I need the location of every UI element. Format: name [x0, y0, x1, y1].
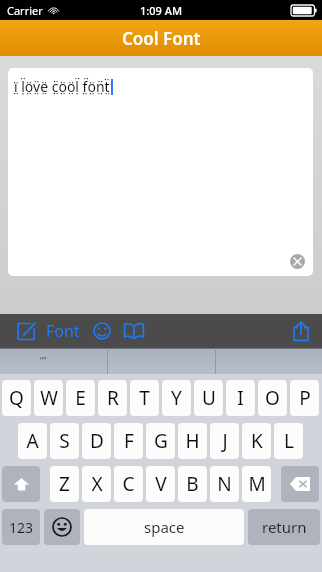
staticText: M — [248, 471, 266, 497]
staticText: Carrier — [7, 3, 43, 18]
button[interactable]: Emoji keyboard — [44, 509, 80, 545]
staticText: 123 — [9, 518, 34, 537]
staticText: B — [186, 471, 199, 497]
button[interactable]: S — [50, 423, 79, 459]
button[interactable]: 123 — [2, 509, 40, 545]
button[interactable]: B — [178, 466, 207, 502]
button[interactable]: D — [82, 423, 111, 459]
button[interactable]: R — [98, 380, 127, 416]
button[interactable]: return — [248, 509, 320, 545]
button[interactable]: Q — [2, 380, 31, 416]
button[interactable]: A — [18, 423, 47, 459]
button[interactable]: N — [210, 466, 239, 502]
staticText: U — [202, 385, 216, 411]
staticText: Cool Font — [122, 27, 201, 50]
button[interactable]: Y — [162, 380, 191, 416]
staticText: S — [59, 428, 70, 454]
staticText: N — [217, 471, 232, 497]
button[interactable]: G — [146, 423, 175, 459]
button[interactable]: Z — [50, 466, 79, 502]
staticText: C — [122, 471, 135, 497]
staticText: P — [299, 385, 311, 411]
button[interactable]: ï̤ ḷ̈ö̤v̤̈ë̤ c̤̈ö̤ö̤ḷ̈ f̤̈ö̤n̤̈ẗ̤ — [8, 68, 313, 276]
staticText: A — [26, 428, 39, 454]
staticText: Font — [46, 320, 80, 342]
button[interactable]: Cool Font — [0, 20, 322, 56]
staticText: return — [262, 517, 307, 537]
button[interactable]: Dictionary — [121, 318, 147, 344]
button[interactable]: Shift — [2, 466, 40, 502]
staticText: V — [155, 471, 167, 497]
staticText: H — [185, 428, 200, 454]
staticText: F — [124, 428, 134, 454]
button[interactable]: Clear text — [290, 254, 305, 269]
button[interactable]: P — [290, 380, 319, 416]
button[interactable]: Font — [46, 320, 80, 342]
button[interactable]: Delete — [281, 466, 319, 502]
staticText: L — [284, 428, 294, 454]
button[interactable]: T — [130, 380, 159, 416]
staticText: “” — [40, 354, 47, 366]
button[interactable]: Emoji — [89, 318, 115, 344]
staticText: I — [237, 385, 244, 411]
staticText: K — [251, 428, 263, 454]
staticText: R — [107, 385, 119, 411]
button[interactable]: Compose — [13, 318, 39, 344]
button[interactable]: C — [114, 466, 143, 502]
button[interactable]: U — [194, 380, 223, 416]
button[interactable]: K — [242, 423, 271, 459]
staticText: T — [139, 385, 150, 411]
button[interactable]: X — [82, 466, 111, 502]
staticText: X — [91, 471, 103, 497]
staticText: E — [75, 385, 86, 411]
staticText: Q — [9, 385, 24, 411]
staticText: W — [40, 385, 58, 411]
button[interactable]: L — [274, 423, 303, 459]
button[interactable]: W — [34, 380, 63, 416]
button[interactable]: F — [114, 423, 143, 459]
button[interactable]: space — [84, 509, 244, 545]
button[interactable]: “” — [40, 354, 47, 366]
staticText: Z — [59, 471, 70, 497]
button[interactable]: Share — [286, 316, 316, 346]
button[interactable]: O — [258, 380, 287, 416]
staticText: G — [154, 428, 168, 454]
staticText: ï̤ ḷ̈ö̤v̤̈ë̤ c̤̈ö̤ö̤ḷ̈ f̤̈ö̤n̤̈ẗ̤ — [14, 77, 110, 96]
staticText: D — [90, 428, 104, 454]
button[interactable]: M — [242, 466, 271, 502]
staticText: space — [144, 517, 185, 537]
button[interactable]: J — [210, 423, 239, 459]
button[interactable]: H — [178, 423, 207, 459]
button[interactable]: I — [226, 380, 255, 416]
button[interactable]: E — [66, 380, 95, 416]
button[interactable]: V — [146, 466, 175, 502]
staticText: Y — [171, 385, 182, 411]
staticText: J — [222, 428, 228, 454]
staticText: 1:09 AM — [140, 3, 183, 18]
staticText: O — [265, 385, 280, 411]
